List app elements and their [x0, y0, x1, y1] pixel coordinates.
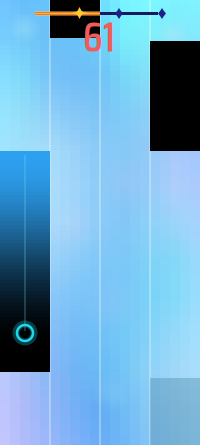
staticText: 61	[83, 4, 115, 70]
